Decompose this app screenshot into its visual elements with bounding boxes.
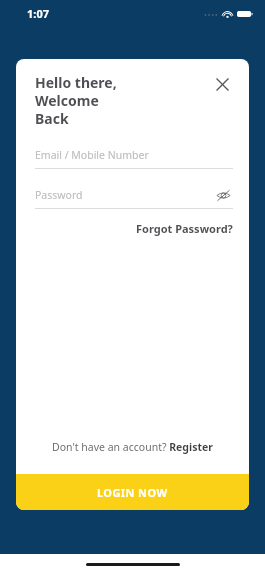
button[interactable]: Don't have an account? Register: [16, 432, 249, 462]
staticText: Password: [35, 188, 213, 202]
button[interactable]: Password: [35, 182, 233, 209]
staticText: Hello there, Welcome Back: [35, 73, 211, 128]
staticText: Don't have an account? Register: [52, 440, 213, 454]
button[interactable]: Close: [211, 73, 233, 95]
staticText: Email / Mobile Number: [35, 148, 233, 162]
staticText: LOGIN NOW: [97, 485, 168, 500]
button[interactable]: LOGIN NOW: [16, 474, 249, 510]
staticText: Forgot Password?: [136, 221, 233, 236]
button[interactable]: Forgot Password?: [35, 221, 233, 236]
staticText: 1:07: [27, 6, 49, 21]
button[interactable]: Email / Mobile Number: [35, 142, 233, 169]
button[interactable]: Show password: [213, 185, 233, 205]
